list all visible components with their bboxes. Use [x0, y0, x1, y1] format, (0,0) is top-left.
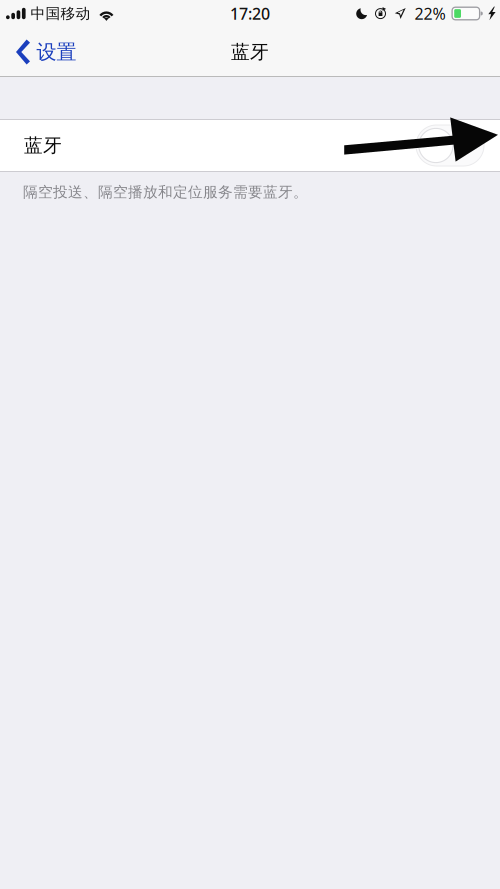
- staticText: 蓝牙: [231, 40, 269, 63]
- staticText: 隔空投送、隔空播放和定位服务需要蓝牙。: [23, 183, 308, 201]
- staticText: 22%: [415, 3, 446, 24]
- button[interactable]: 设置: [0, 27, 88, 77]
- staticText: 蓝牙: [24, 134, 62, 157]
- staticText: 设置: [36, 40, 76, 64]
- staticText: 中国移动: [31, 4, 91, 22]
- button[interactable]: 蓝牙: [0, 119, 500, 172]
- staticText: 17:20: [230, 3, 270, 24]
